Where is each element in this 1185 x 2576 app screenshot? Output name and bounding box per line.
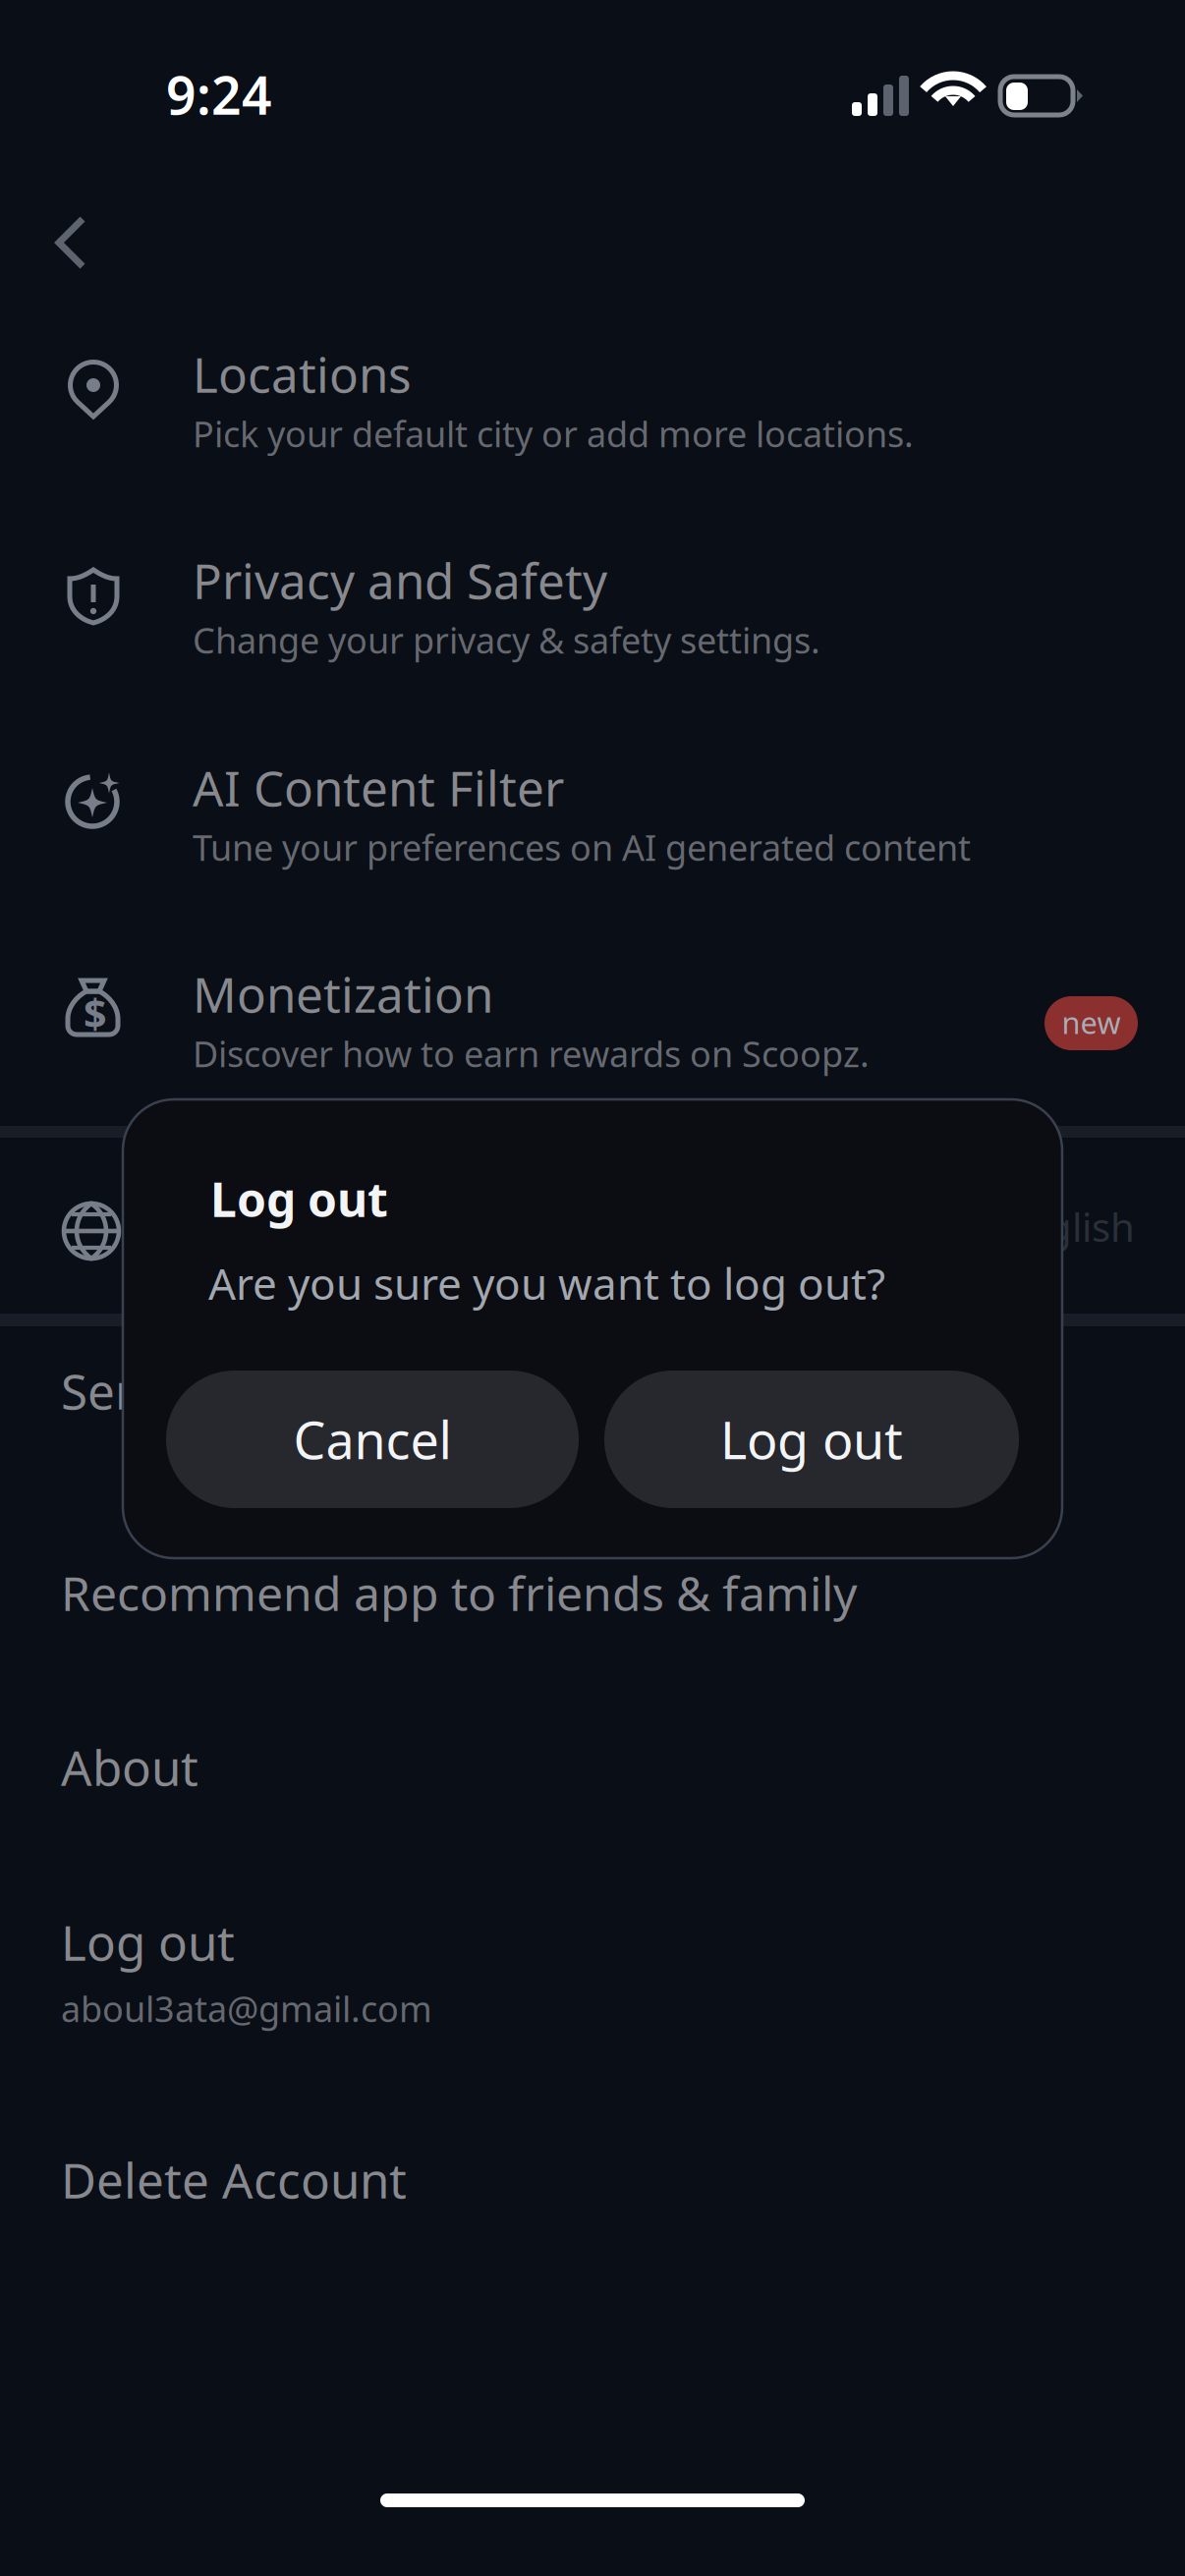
button[interactable]: Log out [0, 0, 1063, 157]
staticText: Log out [720, 1405, 903, 1473]
staticText: $ [84, 985, 107, 1039]
staticText: Recommend app to friends & family [61, 1561, 857, 1624]
staticText: Are you sure you want to log out? [208, 1254, 885, 1312]
staticText: Locations [193, 342, 412, 406]
staticText: Delete Account [61, 2148, 407, 2212]
staticText: 9:24 [166, 60, 272, 129]
staticText: About [61, 1735, 198, 1799]
button[interactable]: Delete Account [0, 0, 1063, 108]
staticText: Log out [210, 1167, 388, 1230]
staticText: Monetization [193, 962, 493, 1026]
button[interactable]: AI Content Filter [0, 0, 1063, 169]
button[interactable]: About [0, 0, 1063, 108]
button[interactable]: English [0, 0, 1063, 176]
button[interactable]: Log out [123, 1099, 537, 1237]
staticText: Log out [61, 1910, 235, 1974]
staticText: new [1062, 1002, 1121, 1042]
button[interactable]: Recommend app to friends & family [0, 0, 1063, 108]
staticText: Send Feedback [61, 1359, 403, 1423]
staticText: AI Content Filter [193, 755, 564, 820]
button[interactable]: Send Feedback [0, 0, 1063, 108]
staticText: Change your privacy & safety settings. [193, 616, 820, 663]
staticText: aboul3ata@gmail.com [61, 1985, 432, 2032]
button[interactable]: Cancel [123, 1099, 536, 1237]
staticText: Privacy and Safety [193, 548, 607, 612]
staticText: Pick your default city or add more locat… [193, 410, 914, 457]
button[interactable]: Locations [0, 0, 1063, 169]
staticText: Cancel [293, 1405, 451, 1473]
staticText: English [1001, 1201, 1135, 1253]
button[interactable]: $ [0, 0, 1063, 169]
button[interactable]: Privacy and Safety [0, 0, 1063, 169]
staticText: Discover how to earn rewards on Scoopz. [193, 1030, 870, 1077]
staticText: Tune your preferences on AI generated co… [193, 824, 971, 871]
